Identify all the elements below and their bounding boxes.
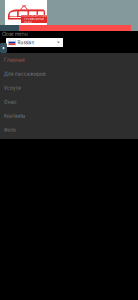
staticText: Фото <box>4 127 16 133</box>
button[interactable]: Услуги <box>0 81 138 95</box>
staticText: Контакты <box>4 113 25 119</box>
staticText: О нас <box>4 99 17 105</box>
staticText: Close menu <box>2 31 28 37</box>
button[interactable]: Фото <box>0 123 138 137</box>
staticText: ТРАМВАЙНЫЙ ПАРК <box>24 17 44 24</box>
staticText: Услуги <box>4 85 21 91</box>
staticText: Russian <box>17 40 34 45</box>
button[interactable]: Russian <box>6 38 63 47</box>
button[interactable]: Главная <box>0 53 138 67</box>
button[interactable]: Для пассажиров <box>0 67 138 81</box>
staticText: НОВОСИБИРСКИЙ <box>21 14 47 17</box>
button[interactable]: Контакты <box>0 109 138 123</box>
staticText: Для пассажиров <box>4 71 46 77</box>
button[interactable]: Chat <box>0 43 7 53</box>
staticText: Главная <box>4 57 25 63</box>
button[interactable]: О нас <box>0 95 138 109</box>
button[interactable]: Home <box>5 0 47 25</box>
button[interactable]: Close menu <box>0 31 138 37</box>
